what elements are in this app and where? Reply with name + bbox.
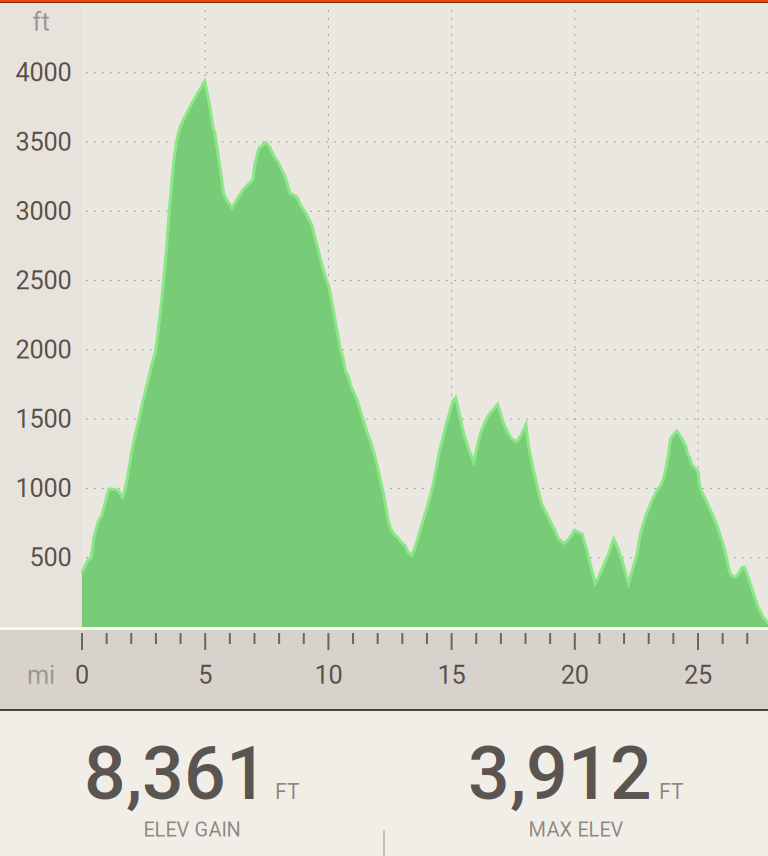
staticText: 500 — [29, 543, 71, 573]
staticText: 20 — [561, 660, 589, 690]
staticText: 15 — [438, 660, 466, 690]
staticText: 1000 — [15, 474, 71, 503]
staticText: 2500 — [15, 266, 71, 295]
staticText: 8,361 — [84, 731, 268, 817]
button[interactable]: 3,912 — [384, 711, 768, 856]
staticText: 0 — [75, 660, 89, 690]
staticText: FT — [275, 779, 300, 804]
staticText: MAX ELEV — [528, 818, 623, 841]
staticText: 4000 — [15, 58, 71, 88]
staticText: 3000 — [15, 196, 71, 226]
staticText: 3500 — [15, 127, 71, 157]
staticText: ELEV GAIN — [143, 818, 240, 841]
staticText: 25 — [684, 660, 712, 690]
staticText: 3,912 — [468, 731, 652, 817]
staticText: 10 — [314, 660, 342, 690]
staticText: FT — [659, 779, 684, 804]
staticText: 1500 — [15, 404, 71, 434]
staticText: 5 — [198, 660, 212, 690]
button[interactable]: 8,361 — [0, 711, 384, 856]
staticText: mi — [27, 660, 55, 690]
staticText: 2000 — [15, 335, 71, 365]
staticText: ft — [32, 7, 49, 37]
